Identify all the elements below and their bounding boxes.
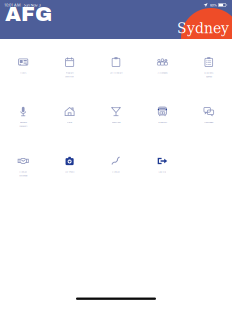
staticText: News: [20, 71, 26, 74]
staticText: 10:01 AM: [4, 2, 21, 8]
staticText: overview: [65, 75, 74, 78]
staticText: AFG: [5, 3, 52, 25]
staticText: My itinerary: [109, 71, 122, 74]
staticText: Sydney: [177, 20, 229, 37]
button[interactable]: Program: [46, 52, 93, 98]
staticText: Messages: [204, 120, 213, 124]
staticText: Contact: [19, 170, 27, 173]
staticText: Exchange: [19, 174, 27, 177]
button[interactable]: Keynote: [0, 101, 46, 147]
staticText: Contact: [112, 170, 120, 173]
staticText: My Photo: [65, 170, 74, 173]
button[interactable]: Contact: [0, 151, 46, 197]
staticText: Log Out: [158, 170, 166, 173]
staticText: Attendees: [157, 71, 167, 74]
staticText: Program: [66, 71, 74, 74]
button[interactable]: AFG: [5, 4, 65, 24]
staticText: Business: [204, 71, 213, 74]
button[interactable]: Attendees: [139, 52, 186, 98]
button[interactable]: Business: [186, 52, 232, 98]
button[interactable]: Log Out: [139, 151, 186, 197]
staticText: Hotel: [67, 120, 73, 124]
button[interactable]: Functions: [93, 101, 139, 147]
staticText: Sun Nov 3: [23, 2, 40, 8]
button[interactable]: My Photo: [46, 151, 93, 197]
button[interactable]: Hotel: [46, 101, 93, 147]
button[interactable]: Contact: [93, 151, 139, 197]
staticText: Transfers: [158, 120, 167, 124]
button[interactable]: News: [0, 52, 46, 98]
staticText: Functions: [111, 120, 120, 124]
staticText: speakers: [19, 124, 27, 127]
button[interactable]: My itinerary: [93, 52, 139, 98]
staticText: Keynote: [20, 120, 27, 124]
button[interactable]: Messages: [186, 101, 232, 147]
staticText: agenda: [206, 75, 212, 78]
button[interactable]: Transfers: [139, 101, 186, 147]
staticText: 48%: [209, 2, 216, 8]
